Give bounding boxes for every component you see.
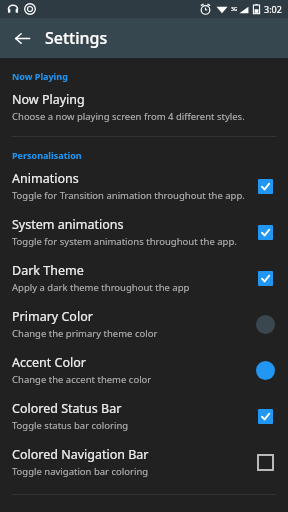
button[interactable]: System animations xyxy=(0,209,288,255)
staticText: Now Playing xyxy=(12,91,85,108)
staticText: Primary Color xyxy=(12,308,93,325)
button[interactable]: Now Playing xyxy=(0,84,288,130)
button[interactable]: Primary Color xyxy=(0,301,288,347)
staticText: Colored Status Bar xyxy=(12,400,122,417)
button[interactable]: Colored Navigation Bar xyxy=(0,439,288,485)
staticText: 3G xyxy=(231,6,238,13)
staticText: Toggle for Transition animation througho… xyxy=(12,189,245,202)
button[interactable]: Unchecked xyxy=(248,445,282,479)
button[interactable]: Checked xyxy=(248,215,282,249)
staticText: System animations xyxy=(12,216,124,233)
staticText: Personalisation xyxy=(12,149,82,161)
staticText: Dark Theme xyxy=(12,262,84,279)
button[interactable]: Checked xyxy=(248,261,282,295)
button[interactable]: Primary color swatch xyxy=(248,307,282,341)
button[interactable]: Accent Color xyxy=(0,347,288,393)
staticText: Toggle status bar coloring xyxy=(12,419,129,432)
staticText: 3:02 xyxy=(264,3,282,15)
staticText: Colored Navigation Bar xyxy=(12,446,149,463)
button[interactable]: Dark Theme xyxy=(0,255,288,301)
staticText: Accent Color xyxy=(12,354,86,371)
staticText: Change the primary theme color xyxy=(12,327,158,340)
staticText: Choose a now playing screen from 4 diffe… xyxy=(12,110,245,123)
staticText: Animations xyxy=(12,170,79,187)
staticText: Toggle for system animations throughout … xyxy=(12,235,237,248)
staticText: Apply a dark theme throughout the app xyxy=(12,281,190,294)
staticText: Change the accent theme color xyxy=(12,373,152,386)
button[interactable]: Accent color swatch xyxy=(248,353,282,387)
button[interactable]: Checked xyxy=(248,399,282,433)
button[interactable]: Colored Status Bar xyxy=(0,393,288,439)
button[interactable]: Animations xyxy=(0,163,288,209)
button[interactable]: Checked xyxy=(248,169,282,203)
staticText: Toggle navigation bar coloring xyxy=(12,465,149,478)
staticText: Settings xyxy=(45,27,108,49)
button[interactable]: Back xyxy=(8,24,36,52)
staticText: Now Playing xyxy=(12,70,68,82)
